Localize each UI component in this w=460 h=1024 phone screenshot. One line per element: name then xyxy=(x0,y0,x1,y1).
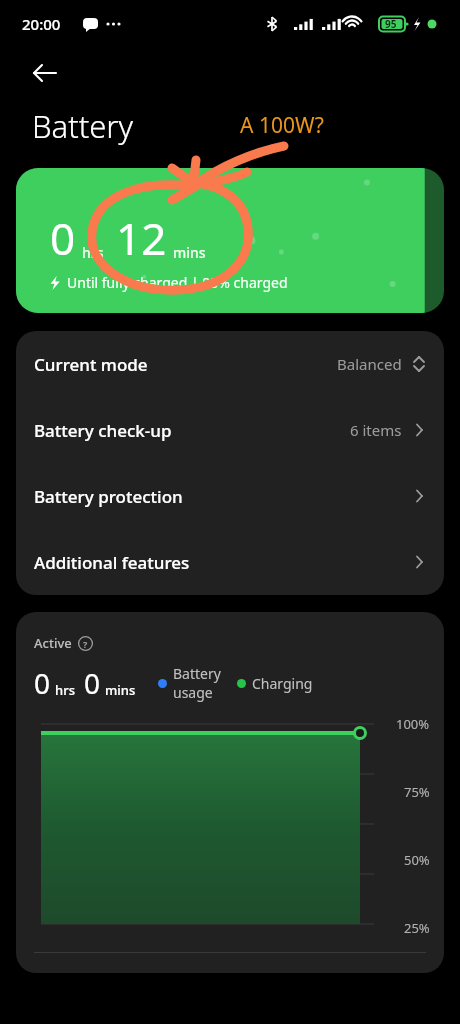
staticText: Balanced xyxy=(337,354,402,374)
staticText: Additional features xyxy=(34,551,190,574)
staticText: mins xyxy=(105,681,136,699)
staticText: 50% xyxy=(404,851,430,869)
staticText: 0 xyxy=(34,664,51,702)
button[interactable]: Battery protection xyxy=(16,463,444,529)
button[interactable]: 0 xyxy=(16,168,444,313)
button[interactable]: Additional features xyxy=(16,529,444,595)
staticText: 0 xyxy=(50,208,76,268)
staticText: 12 xyxy=(116,208,167,268)
staticText: hrs xyxy=(82,243,104,262)
staticText: Battery xyxy=(32,105,134,147)
staticText: Current mode xyxy=(34,353,148,376)
staticText: Battery usage xyxy=(173,664,221,702)
staticText: Until fully charged | 95% charged xyxy=(67,273,288,292)
staticText: Charging xyxy=(252,674,313,693)
staticText: A 100W? xyxy=(240,111,324,140)
staticText: Active xyxy=(34,634,72,652)
button[interactable]: Current mode xyxy=(16,331,444,397)
staticText: Battery check-up xyxy=(34,419,172,442)
staticText: 100% xyxy=(396,715,430,733)
staticText: Battery protection xyxy=(34,485,183,508)
button[interactable]: Help xyxy=(78,636,93,651)
staticText: 6 items xyxy=(350,420,402,440)
button[interactable]: Battery check-up xyxy=(16,397,444,463)
staticText: 0 xyxy=(84,664,101,702)
staticText: 20:00 xyxy=(22,14,61,34)
staticText: 95 xyxy=(385,17,397,31)
staticText: mins xyxy=(173,243,206,262)
staticText: 75% xyxy=(404,783,430,801)
staticText: ? xyxy=(83,638,88,650)
button[interactable]: Back xyxy=(22,50,68,96)
staticText: hrs xyxy=(55,681,75,699)
staticText: 25% xyxy=(404,919,430,937)
